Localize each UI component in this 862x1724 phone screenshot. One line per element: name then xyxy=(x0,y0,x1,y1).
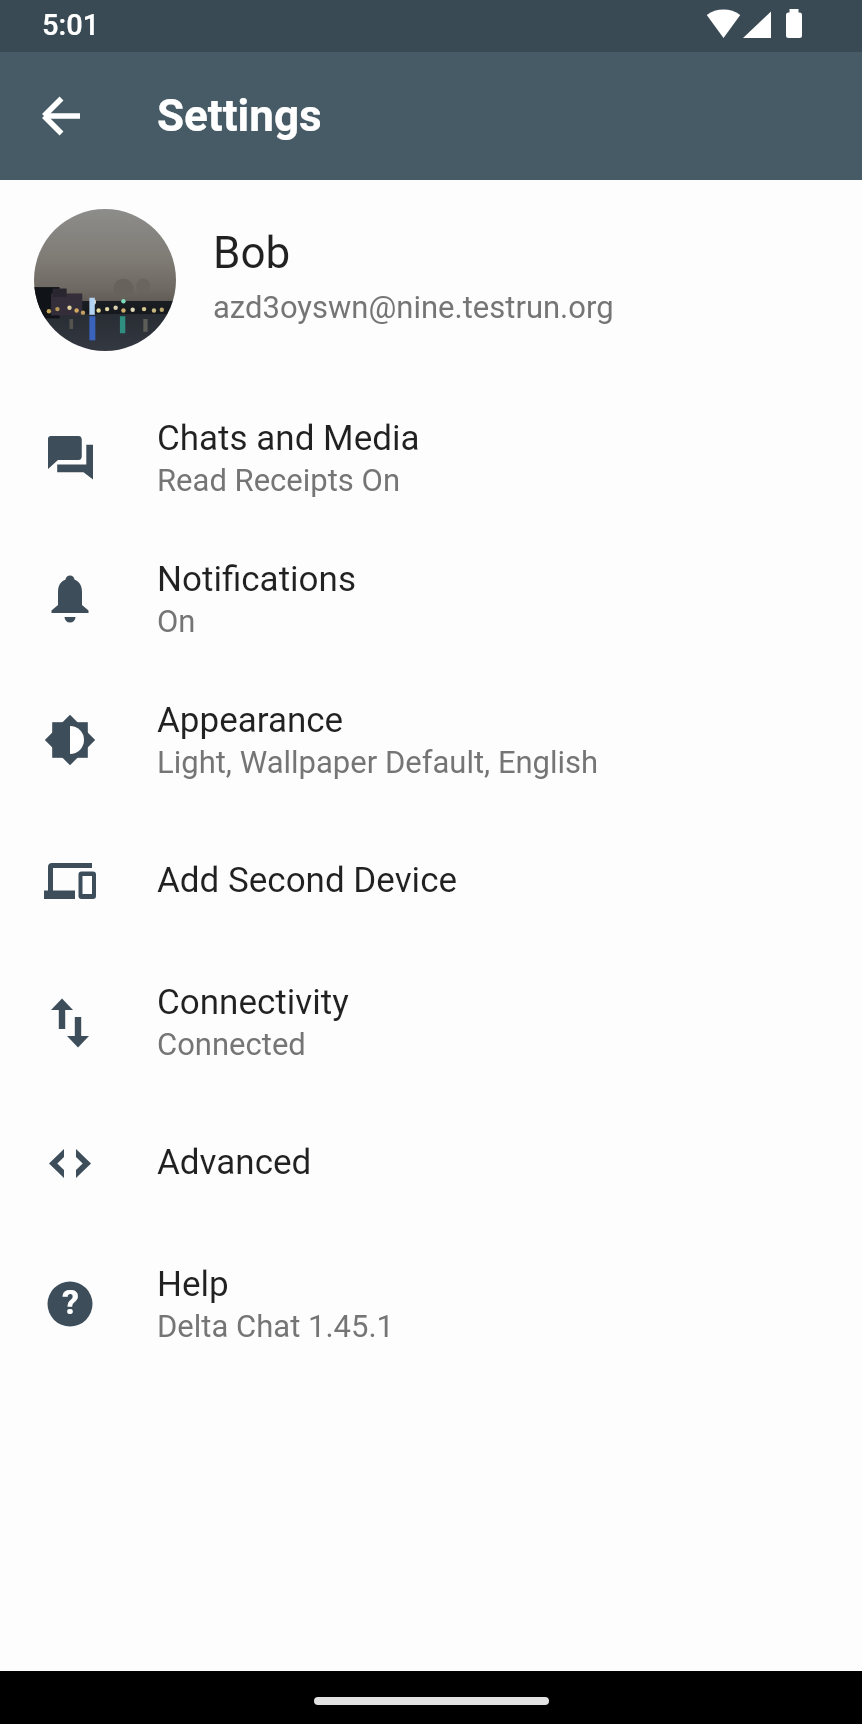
staticText: ? xyxy=(62,1282,79,1322)
button[interactable]: Connectivity xyxy=(0,951,862,1092)
staticText: Help xyxy=(157,1264,229,1305)
staticText: Delta Chat 1.45.1 xyxy=(157,1308,394,1344)
staticText: Appearance xyxy=(157,700,344,741)
staticText: azd3oyswn@nine.testrun.org xyxy=(213,289,614,325)
staticText: Read Receipts On xyxy=(157,462,401,498)
button[interactable]: Add Second Device xyxy=(0,810,862,951)
staticText: On xyxy=(157,603,196,639)
button[interactable]: Appearance xyxy=(0,669,862,810)
button[interactable] xyxy=(26,80,98,152)
staticText: Notifications xyxy=(157,559,356,600)
button[interactable]: Notifications xyxy=(0,528,862,669)
staticText: Advanced xyxy=(157,1142,312,1183)
staticText: Light, Wallpaper Default, English xyxy=(157,744,599,780)
staticText: Connected xyxy=(157,1026,306,1062)
button[interactable]: ? xyxy=(0,1233,862,1374)
staticText: Bob xyxy=(213,227,291,279)
staticText: Connectivity xyxy=(157,982,349,1023)
button[interactable] xyxy=(314,1697,549,1705)
button[interactable]: Bob xyxy=(0,180,862,387)
button[interactable]: Advanced xyxy=(0,1092,862,1233)
staticText: Add Second Device xyxy=(157,860,458,901)
button[interactable]: Chats and Media xyxy=(0,387,862,528)
staticText: Settings xyxy=(157,90,322,142)
staticText: Chats and Media xyxy=(157,418,420,459)
staticText: 5:01 xyxy=(42,8,100,42)
